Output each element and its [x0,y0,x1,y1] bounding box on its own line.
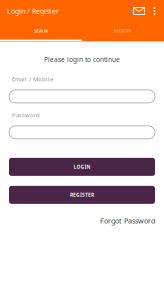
button[interactable]: Forgot Password [9,204,155,226]
staticText: REGISTER [70,191,94,198]
button[interactable]: REGISTER [82,22,164,41]
button[interactable]: More options [148,0,161,22]
staticText: LOGIN [73,163,90,170]
button[interactable]: REGISTER [9,186,155,204]
staticText: REGISTER [114,28,132,34]
button[interactable]: LOGIN [9,158,155,176]
staticText: SIGN IN [34,28,48,34]
button[interactable]: SIGN IN [0,22,82,41]
button[interactable]: Messages [130,0,148,22]
staticText: Email / Mobile [12,75,53,83]
staticText: Forgot Password [100,216,155,226]
staticText: Please login to continue [44,55,120,64]
staticText: Login / Register [7,6,59,16]
staticText: Password [12,111,40,119]
